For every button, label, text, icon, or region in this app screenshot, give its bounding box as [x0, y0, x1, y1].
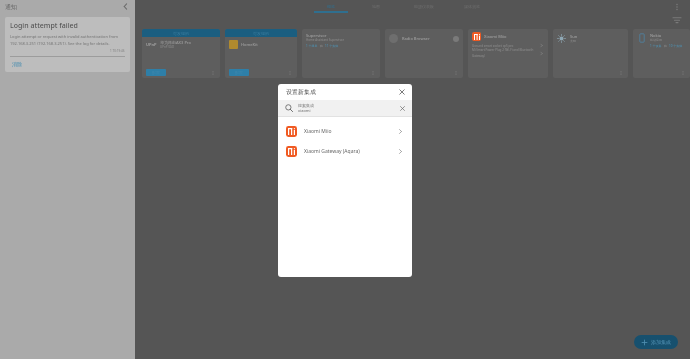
staticText: 添加集成	[651, 339, 671, 345]
staticText: Xiaomi Miio	[304, 128, 397, 135]
staticText: 设置新集成	[286, 88, 316, 96]
staticText: Gosund smart socket cp5 pro	[472, 44, 539, 48]
button[interactable]: 配置	[146, 69, 166, 76]
staticText: xiaomi	[298, 108, 311, 113]
staticText: 搜索集成	[298, 103, 314, 108]
staticText: 1 70:19:46	[110, 49, 125, 53]
button[interactable]: Filter	[672, 15, 682, 25]
staticText: Login attempt or request with invalid au…	[10, 34, 125, 47]
button[interactable]: Collapse	[121, 2, 130, 11]
button[interactable]: Sun	[553, 29, 628, 78]
button[interactable]: 可发现的	[142, 29, 220, 78]
staticText: Xiaomi Gateway (Aqara)	[304, 148, 397, 155]
button[interactable]: 消除	[10, 60, 24, 68]
button[interactable]: Radio Browser	[385, 29, 463, 78]
staticText: 地图	[372, 4, 380, 9]
staticText: HomeKit	[241, 42, 258, 47]
button[interactable]: Nokia	[633, 29, 690, 78]
staticText: UPnP/IGD	[160, 45, 175, 49]
staticText: 移动应用	[650, 38, 662, 42]
button[interactable]: 添加集成	[634, 335, 678, 349]
staticText: 华为路由AX3 Pro	[160, 40, 191, 45]
staticText: 1 个设备	[650, 44, 662, 48]
staticText: Home Assistant Supervisor	[306, 38, 344, 42]
staticText: 可发现的	[253, 31, 269, 36]
staticText: 通知	[5, 3, 17, 11]
staticText: 能源仪表板	[414, 4, 434, 9]
staticText: Login attempt failed	[10, 21, 78, 31]
button[interactable]: Xiaomi Gateway (Aqara)	[278, 141, 412, 161]
button[interactable]: 可发现的	[225, 29, 297, 78]
button[interactable]: Clear search	[398, 104, 407, 113]
staticText: Xiaomi Miio	[484, 34, 507, 39]
staticText: 11 个实体	[325, 44, 339, 48]
button[interactable]: 概览	[310, 0, 352, 13]
button[interactable]: 配置	[229, 69, 249, 76]
button[interactable]: Xiaomi Miio	[278, 121, 412, 141]
button[interactable]: Close	[397, 87, 407, 97]
staticText: Nokia	[650, 33, 662, 38]
staticText: 可发现的	[173, 31, 189, 36]
staticText: 和	[664, 44, 667, 48]
staticText: Supervisor	[306, 33, 327, 38]
staticText: 概览	[327, 4, 335, 9]
staticText: UPnP	[146, 42, 157, 47]
staticText: Radio Browser	[402, 36, 430, 41]
button[interactable]: Supervisor	[302, 29, 380, 78]
button[interactable]: Login attempt failed	[5, 17, 130, 72]
staticText: 1 个服务	[306, 44, 318, 48]
staticText: Sun	[570, 34, 578, 39]
staticText: Mi Smart Power Plug 2 (Wi-Fi and Bluetoo…	[472, 48, 539, 58]
button[interactable]: More options	[672, 2, 682, 12]
button[interactable]: 搜索集成	[278, 100, 412, 116]
staticText: 消除	[12, 61, 22, 67]
staticText: 媒体浏览	[464, 4, 480, 9]
staticText: 太阳	[570, 39, 576, 43]
staticText: 和	[320, 44, 323, 48]
button[interactable]: Xiaomi Miio	[468, 29, 548, 78]
staticText: 10 个实体	[669, 44, 683, 48]
